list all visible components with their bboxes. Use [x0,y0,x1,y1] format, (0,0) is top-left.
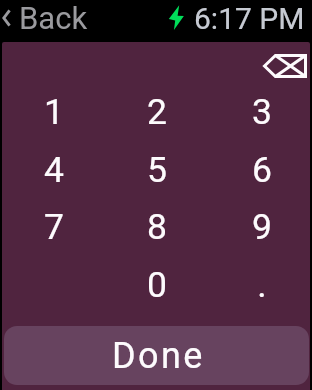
staticText: 8 [147,206,167,248]
button[interactable]: 3 [212,85,310,139]
button[interactable]: . [212,258,310,312]
staticText: Done [112,335,205,377]
staticText: 9 [252,206,272,248]
staticText: 6:17 PM [194,1,305,36]
staticText: 0 [147,264,167,306]
staticText: Back [19,0,88,36]
button[interactable]: 0 [107,258,207,312]
staticText: 3 [252,91,272,133]
button[interactable]: 8 [107,200,207,254]
staticText: 5 [147,149,167,191]
button[interactable]: Back [2,0,88,36]
button[interactable]: 6 [212,143,310,197]
button[interactable]: Backspace [255,45,310,87]
button[interactable]: 9 [212,200,310,254]
staticText: 7 [44,206,64,248]
staticText: 2 [147,91,167,133]
button[interactable]: 1 [4,85,104,139]
button[interactable]: 2 [107,85,207,139]
staticText: 6 [252,149,272,191]
staticText: . [257,264,267,306]
button[interactable]: Done [4,326,309,385]
button[interactable]: 7 [4,200,104,254]
button[interactable]: 5 [107,143,207,197]
button[interactable]: 4 [4,143,104,197]
staticText: 1 [44,91,64,133]
staticText: 4 [44,149,64,191]
